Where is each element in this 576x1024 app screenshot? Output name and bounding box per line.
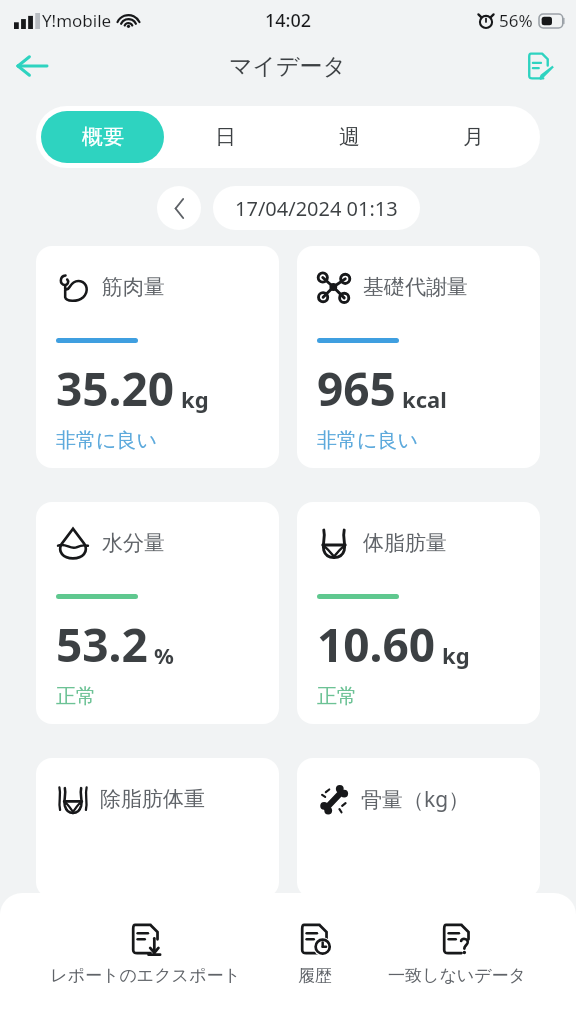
- button[interactable]: 骨量（kg）: [297, 758, 540, 898]
- button[interactable]: 17/04/2024 01:13: [213, 186, 420, 230]
- button[interactable]: Edit: [518, 43, 564, 89]
- staticText: 基礎代謝量: [363, 274, 468, 300]
- staticText: kg: [442, 640, 470, 670]
- staticText: 35.20: [56, 357, 175, 420]
- staticText: 除脂肪体重: [100, 786, 205, 812]
- staticText: レポートのエクスポート: [50, 965, 241, 986]
- staticText: kcal: [402, 384, 447, 414]
- staticText: 水分量: [102, 530, 165, 556]
- button[interactable]: 筋肉量: [36, 246, 279, 468]
- button[interactable]: 履歴: [292, 921, 338, 988]
- staticText: 骨量（kg）: [361, 785, 470, 814]
- button[interactable]: 水分量: [36, 502, 279, 724]
- staticText: 非常に良い: [56, 428, 157, 453]
- staticText: 月: [463, 124, 484, 150]
- button[interactable]: 日: [164, 111, 287, 163]
- staticText: %: [154, 640, 174, 670]
- staticText: 一致しないデータ: [388, 965, 526, 986]
- staticText: 正常: [56, 684, 96, 709]
- staticText: 10.60: [317, 613, 436, 676]
- staticText: 週: [339, 124, 360, 150]
- button[interactable]: レポートのエクスポート: [44, 921, 247, 988]
- staticText: 履歴: [298, 965, 332, 986]
- staticText: 17/04/2024 01:13: [235, 195, 398, 222]
- button[interactable]: Back: [8, 42, 56, 90]
- button[interactable]: Previous: [157, 186, 201, 230]
- button[interactable]: 除脂肪体重: [36, 758, 279, 898]
- staticText: 53.2: [56, 613, 148, 676]
- staticText: 筋肉量: [102, 274, 165, 300]
- button[interactable]: 体脂肪量: [297, 502, 540, 724]
- button[interactable]: 基礎代謝量: [297, 246, 540, 468]
- button[interactable]: 月: [411, 111, 535, 163]
- staticText: 965: [317, 357, 396, 420]
- staticText: 非常に良い: [317, 428, 418, 453]
- button[interactable]: 週: [287, 111, 411, 163]
- staticText: kg: [181, 384, 209, 414]
- staticText: マイデータ: [229, 52, 347, 81]
- staticText: 56%: [499, 9, 533, 32]
- staticText: 14:02: [265, 8, 312, 33]
- staticText: 日: [215, 124, 236, 150]
- button[interactable]: 概要: [41, 111, 164, 163]
- staticText: Y!mobile: [42, 9, 112, 32]
- button[interactable]: 一致しないデータ: [382, 921, 532, 988]
- staticText: 体脂肪量: [363, 530, 447, 556]
- staticText: 概要: [82, 124, 124, 150]
- staticText: 正常: [317, 684, 357, 709]
